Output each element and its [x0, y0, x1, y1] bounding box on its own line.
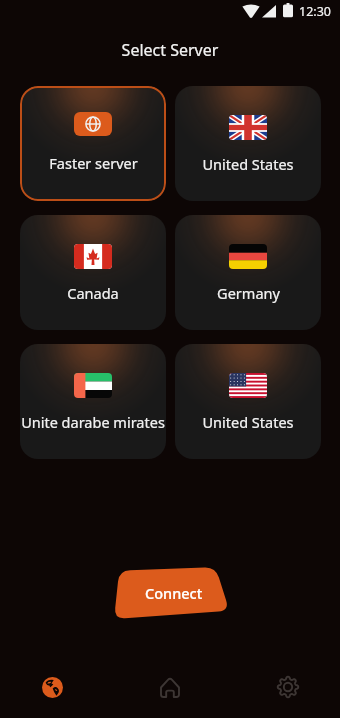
staticText: Germany: [217, 283, 280, 303]
staticText: Faster server: [49, 153, 138, 173]
staticText: Select Server: [0, 39, 340, 61]
button[interactable]: Servers: [28, 663, 76, 711]
staticText: Connect: [145, 583, 203, 603]
button[interactable]: Germany: [175, 215, 321, 330]
button[interactable]: Unite darabe mirates: [20, 344, 166, 459]
button[interactable]: Settings: [264, 663, 312, 711]
staticText: 12:30: [299, 3, 331, 20]
button[interactable]: United States: [175, 344, 321, 459]
button[interactable]: Connect: [112, 563, 233, 621]
button[interactable]: United States: [175, 86, 321, 201]
staticText: Canada: [67, 283, 119, 303]
staticText: United States: [202, 154, 294, 174]
button[interactable]: Canada: [20, 215, 166, 330]
button[interactable]: Faster server: [20, 86, 166, 201]
staticText: Unite darabe mirates: [21, 412, 165, 432]
staticText: United States: [202, 412, 294, 432]
button[interactable]: Home: [146, 663, 194, 711]
